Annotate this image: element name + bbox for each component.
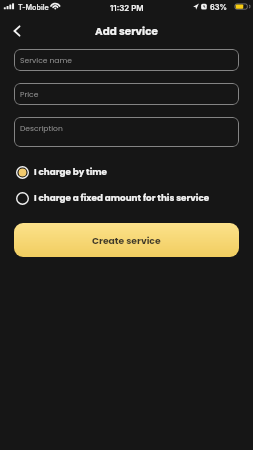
staticText: I charge a fixed amount for this service bbox=[34, 192, 210, 204]
button[interactable]: Create service bbox=[14, 223, 239, 257]
staticText: Create service bbox=[92, 234, 161, 247]
staticText: Service name bbox=[20, 55, 72, 66]
staticText: Add service bbox=[95, 24, 158, 39]
button[interactable]: I charge by time bbox=[14, 163, 239, 181]
button[interactable]: I charge a fixed amount for this service bbox=[14, 189, 239, 207]
staticText: Price bbox=[20, 89, 39, 100]
staticText: Description bbox=[20, 123, 63, 134]
staticText: T-Mobile bbox=[18, 3, 49, 12]
staticText: I charge by time bbox=[34, 166, 108, 178]
staticText: 11:32 PM bbox=[110, 3, 144, 13]
button[interactable]: Service name bbox=[14, 49, 239, 71]
staticText: 63% bbox=[210, 3, 227, 12]
button[interactable]: Back bbox=[6, 20, 28, 42]
button[interactable]: Price bbox=[14, 83, 239, 105]
button[interactable]: Description bbox=[14, 117, 239, 147]
